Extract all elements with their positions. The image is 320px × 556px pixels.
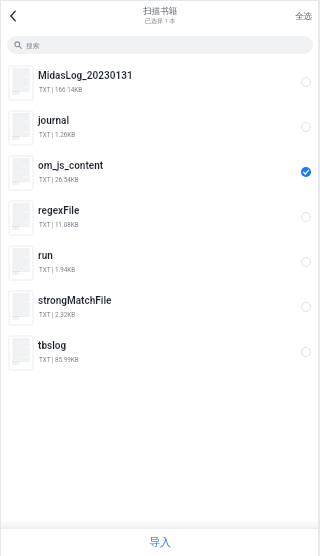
staticText: TXT | 85.99KB	[39, 356, 79, 363]
staticText: 扫描书籍	[143, 6, 178, 17]
button[interactable]: TXT	[0, 150, 320, 195]
staticText: TXT	[12, 270, 20, 276]
staticText: tbslog	[38, 340, 67, 352]
staticText: om_js_content	[38, 160, 104, 172]
button[interactable]: TXT	[0, 285, 320, 330]
staticText: TXT | 1.94KB	[39, 266, 76, 273]
staticText: TXT | 11.08KB	[39, 221, 79, 228]
staticText: TXT	[12, 315, 20, 321]
button[interactable]: Back	[3, 6, 23, 26]
staticText: TXT	[12, 225, 20, 231]
staticText: 已选择 1 本	[145, 17, 176, 25]
staticText: TXT	[12, 360, 20, 366]
staticText: run	[38, 250, 53, 262]
staticText: TXT	[12, 90, 20, 96]
button[interactable]: TXT	[0, 60, 320, 105]
staticText: strongMatchFile	[38, 295, 112, 307]
button[interactable]: 全选	[287, 6, 320, 27]
staticText: TXT	[12, 180, 20, 186]
staticText: 搜索	[26, 41, 40, 50]
staticText: regexFile	[38, 205, 80, 217]
staticText: TXT	[12, 135, 20, 141]
staticText: TXT | 1.26KB	[39, 131, 76, 138]
staticText: 导入	[149, 535, 171, 549]
staticText: TXT | 26.54KB	[39, 176, 79, 183]
staticText: TXT | 2.32KB	[39, 311, 76, 318]
button[interactable]: TXT	[0, 240, 320, 285]
button[interactable]: 搜索	[7, 36, 313, 54]
staticText: journal	[38, 115, 70, 127]
button[interactable]: TXT	[0, 330, 320, 375]
button[interactable]: TXT	[0, 105, 320, 150]
button[interactable]: 导入	[123, 530, 197, 554]
button[interactable]: TXT	[0, 195, 320, 240]
staticText: MidasLog_20230131	[38, 70, 133, 82]
staticText: TXT | 166.14KB	[39, 86, 83, 93]
staticText: 全选	[295, 11, 312, 22]
